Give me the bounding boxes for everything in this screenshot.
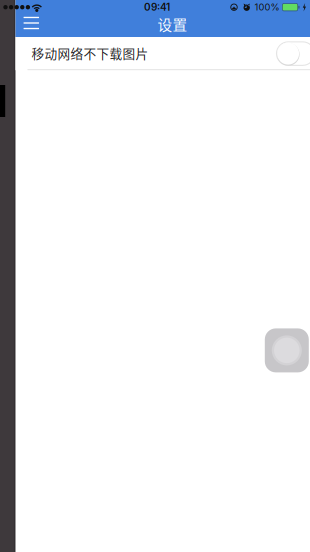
button[interactable]: AssistiveTouch [265, 328, 309, 372]
button[interactable]: 移动网络不下载图片 [15, 37, 310, 70]
staticText: 移动网络不下载图片 [31, 44, 148, 62]
staticText: 100% [254, 2, 279, 13]
staticText: 09:41 [144, 1, 170, 13]
staticText: 设置 [157, 13, 187, 35]
button[interactable]: Do not download images on cellular [276, 42, 310, 65]
button[interactable]: Menu [16, 10, 46, 36]
